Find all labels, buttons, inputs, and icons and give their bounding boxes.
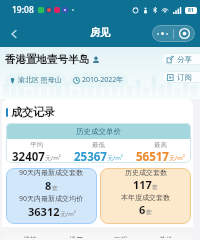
staticText: 楼层 [69,235,83,238]
button[interactable]: 历史成交套数 [100,168,191,224]
staticText: 元/m² [60,210,76,218]
button[interactable]: 90天内最新成交套数 [6,168,97,224]
staticText: 90天内最新成交均价 [19,194,84,204]
staticText: 订阅 [177,73,192,82]
button[interactable]: Back [6,26,22,42]
staticText: 8 [45,178,52,193]
staticText: 25367 [74,149,107,163]
button[interactable]: Close [174,25,195,42]
staticText: 成交记录 [11,105,55,119]
staticText: 最高 [154,141,167,149]
staticText: 历史成交套数 [125,168,167,177]
staticText: 90天内最新成交套数 [19,168,84,178]
staticText: 本年度成交套数 [121,193,170,202]
staticText: 渝北区 照母山 [18,75,62,85]
staticText: 分享 [177,55,192,64]
staticText: 总价 [159,235,173,238]
staticText: 香港置地壹号半岛 [5,53,89,66]
staticText: 历史成交单价 [76,127,121,136]
button[interactable]: 分享 [162,53,200,65]
staticText: 最低 [92,141,105,149]
staticText: 面积 [114,235,128,238]
staticText: 56517 [136,149,169,163]
staticText: 81 [188,7,194,14]
staticText: 套 [146,208,152,216]
staticText: 2010-2022年 [82,75,124,85]
staticText: 6 [139,202,146,217]
button[interactable]: 订阅 [162,71,200,83]
button[interactable]: More [152,25,173,42]
staticText: 元/m² [169,154,185,162]
button[interactable]: 2010-2022年 [69,73,128,87]
staticText: 楼栋 [23,235,37,238]
staticText: 元/m² [45,154,61,162]
staticText: 元/m² [107,154,123,162]
staticText: 32407 [12,149,45,163]
staticText: 房见 [90,26,110,39]
staticText: 36312 [28,204,60,219]
button[interactable]: 渝北区 照母山 [5,73,66,87]
staticText: 平均 [30,141,43,149]
staticText: 套 [152,183,158,191]
staticText: 19:08 [12,4,34,16]
staticText: 套 [52,184,58,192]
staticText: 117 [133,177,152,192]
